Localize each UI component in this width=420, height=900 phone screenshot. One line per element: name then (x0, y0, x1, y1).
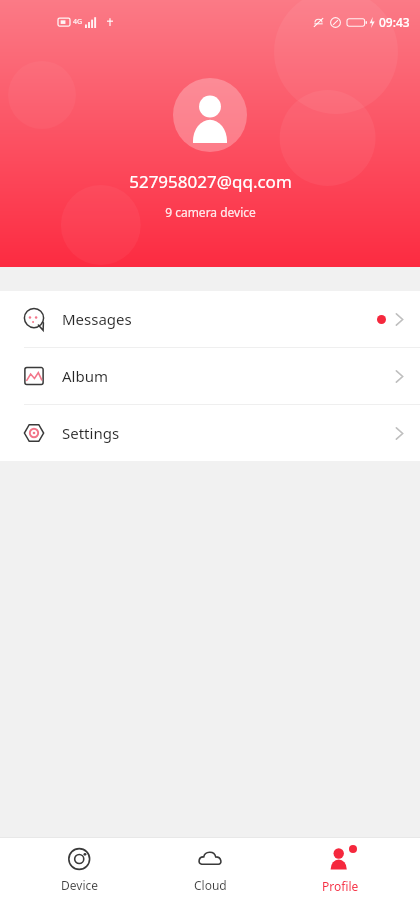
button[interactable]: Profile photo (173, 78, 247, 152)
staticText: Settings (62, 423, 120, 443)
button[interactable]: Device (30, 838, 130, 900)
button[interactable]: Cloud (160, 838, 260, 900)
staticText: 9 camera device (165, 204, 256, 220)
staticText: Cloud (194, 877, 227, 893)
staticText: Messages (62, 309, 132, 329)
staticText: Album (62, 366, 108, 386)
button[interactable]: Profile (290, 838, 390, 900)
staticText: Profile (322, 878, 359, 894)
button[interactable]: Messages (0, 291, 420, 347)
staticText: 4G (73, 17, 83, 27)
staticText: 527958027@qq.com (129, 170, 292, 193)
staticText: 09:43 (379, 14, 410, 30)
button[interactable]: Settings (0, 405, 420, 461)
button[interactable]: Album (0, 348, 420, 404)
staticText: Device (61, 877, 99, 893)
